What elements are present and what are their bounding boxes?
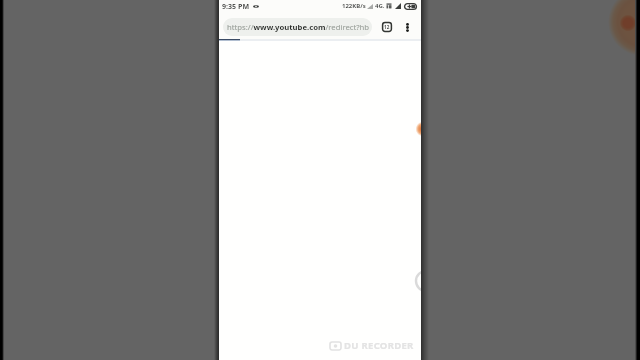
button[interactable]: More options [398,18,416,36]
staticText: DU RECORDER [344,339,414,352]
staticText: 4G. [375,2,385,10]
staticText: 122KB/s [342,2,366,10]
staticText: 12 [384,24,390,30]
staticText: 9:35 PM [222,1,250,11]
staticText: https://www.youtube.com/redirect?hb [227,22,370,32]
button[interactable]: Tabs [378,18,396,36]
button[interactable]: https://www.youtube.com/redirect?hb [223,18,372,36]
